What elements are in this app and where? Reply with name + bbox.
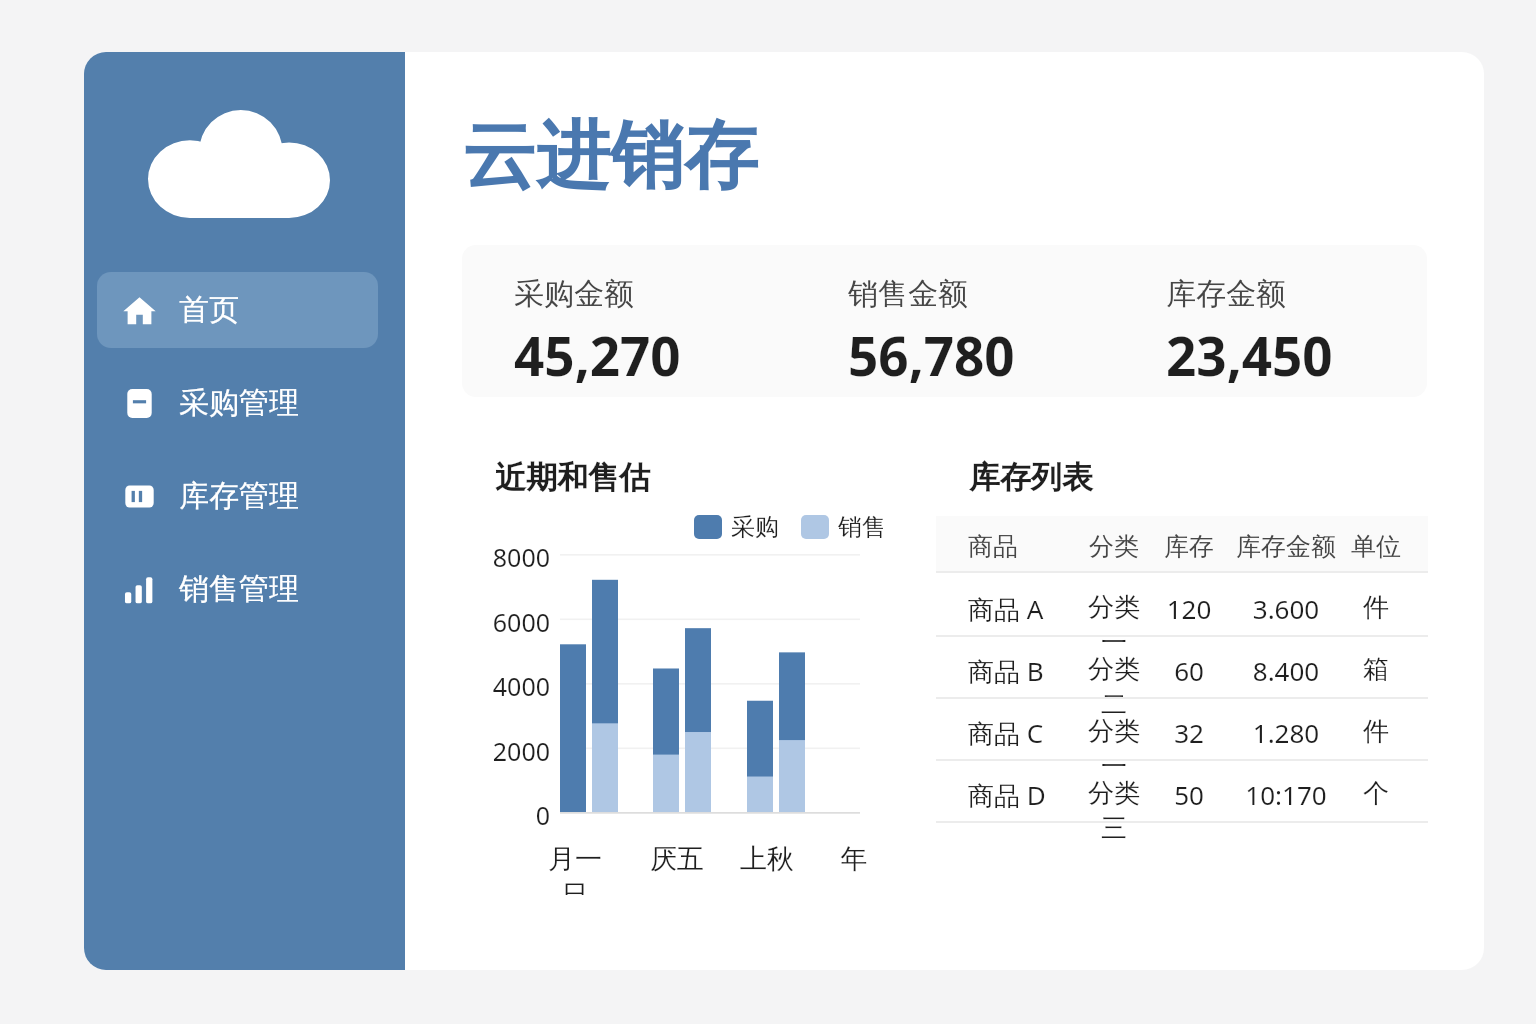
staticText: 32	[1154, 715, 1224, 750]
staticText: 120	[1154, 591, 1224, 626]
staticText: 库存金额	[1166, 275, 1286, 313]
button[interactable]: 采购金额	[510, 271, 685, 395]
staticText: 分类二	[1076, 653, 1152, 721]
button[interactable]: 销售金额	[844, 271, 1019, 395]
staticText: 分类三	[1076, 777, 1152, 845]
button[interactable]	[936, 573, 1428, 635]
button[interactable]: 库存管理	[97, 458, 378, 534]
staticText: 2000	[482, 734, 550, 768]
staticText: 60	[1154, 653, 1224, 688]
staticText: 0	[482, 798, 550, 832]
staticText: 厌五	[637, 842, 717, 876]
staticText: 库存列表	[969, 458, 1093, 497]
staticText: 商品 D	[968, 777, 1068, 813]
staticText: 商品 B	[968, 653, 1068, 689]
staticText: 上秋	[727, 842, 807, 876]
staticText: 件	[1348, 715, 1404, 748]
staticText: 月一日	[535, 842, 615, 895]
staticText: 云进销存	[462, 110, 758, 203]
staticText: 6000	[482, 605, 550, 639]
staticText: 50	[1154, 777, 1224, 812]
staticText: 单位	[1348, 531, 1404, 562]
staticText: 分类	[1076, 531, 1152, 562]
staticText: 箱	[1348, 653, 1404, 686]
staticText: 3.600	[1228, 591, 1344, 626]
staticText: 销售	[838, 512, 886, 542]
staticText: 8000	[482, 540, 550, 574]
button[interactable]	[936, 759, 1428, 821]
button[interactable]: 库存金额	[1162, 271, 1337, 395]
staticText: 采购金额	[514, 275, 634, 313]
button[interactable]	[936, 635, 1428, 697]
staticText: 10:170	[1228, 777, 1344, 812]
staticText: 8.400	[1228, 653, 1344, 688]
staticText: 库存管理	[179, 477, 299, 515]
staticText: 商品 C	[968, 715, 1068, 751]
button[interactable]: 采购管理	[97, 365, 378, 441]
staticText: 销售金额	[848, 275, 968, 313]
staticText: 库存金额	[1228, 531, 1344, 562]
staticText: 23,450	[1166, 319, 1333, 391]
staticText: 首页	[179, 291, 239, 329]
staticText: 近期和售估	[495, 458, 650, 497]
staticText: 采购管理	[179, 384, 299, 422]
staticText: 1.280	[1228, 715, 1344, 750]
staticText: 年	[814, 842, 894, 876]
button[interactable]	[936, 697, 1428, 759]
button[interactable]: 首页	[97, 272, 378, 348]
staticText: 件	[1348, 591, 1404, 624]
staticText: 库存	[1154, 531, 1224, 562]
staticText: 销售管理	[179, 570, 299, 608]
staticText: 商品	[968, 531, 1068, 562]
staticText: 分类一	[1076, 591, 1152, 659]
staticText: 采购	[731, 512, 779, 542]
staticText: 4000	[482, 669, 550, 703]
staticText: 56,780	[848, 319, 1015, 391]
staticText: 商品 A	[968, 591, 1068, 627]
staticText: 个	[1348, 777, 1404, 810]
staticText: 45,270	[514, 319, 681, 391]
button[interactable]: 销售管理	[97, 551, 378, 627]
staticText: 分类一	[1076, 715, 1152, 783]
